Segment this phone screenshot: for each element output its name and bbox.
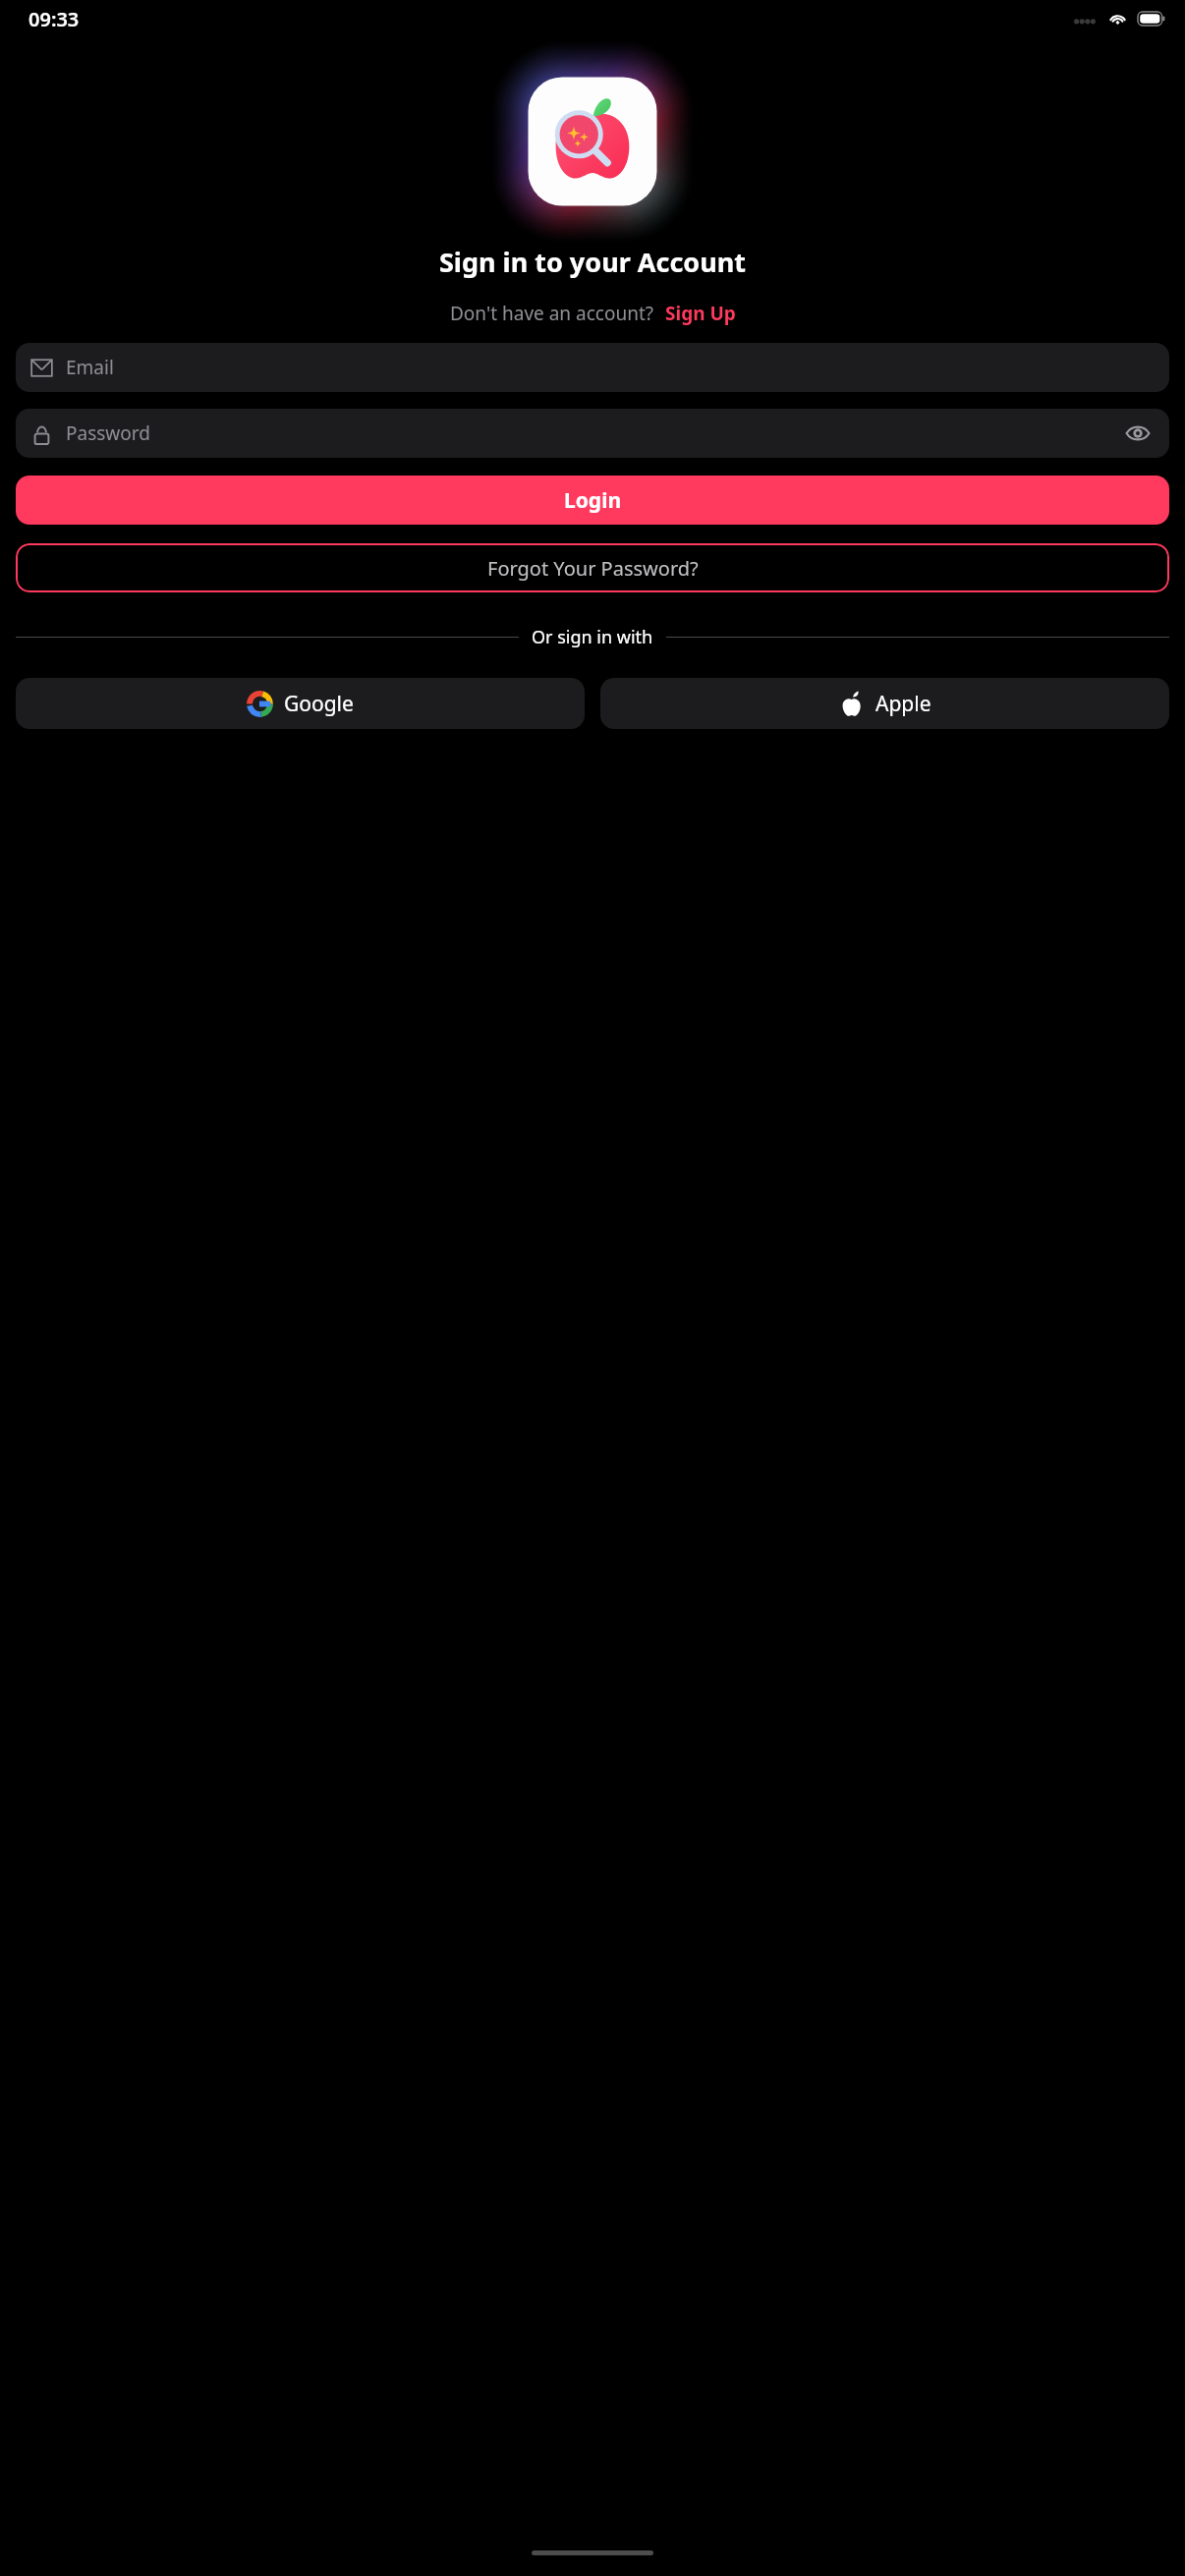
button[interactable]: Forgot Your Password? [16,543,1169,592]
button[interactable]: Email [16,343,1169,392]
staticText: Or sign in with [532,625,653,649]
staticText: Password [66,420,150,446]
staticText: Don't have an account? [450,301,654,326]
staticText: Email [66,355,114,380]
staticText: Google [284,690,354,718]
button[interactable]: Show password [1121,417,1155,450]
staticText: Forgot Your Password? [487,555,699,582]
staticText: 09:33 [28,6,80,32]
staticText: Sign Up [665,301,736,326]
staticText: Sign in to your Account [0,244,1185,280]
button[interactable]: Login [16,476,1169,525]
button[interactable]: Password [16,409,1169,458]
button[interactable]: Apple [600,678,1169,729]
button[interactable]: Google [16,678,585,729]
staticText: Login [564,486,622,515]
button[interactable]: Sign Up [665,301,736,326]
staticText: Apple [875,690,931,718]
